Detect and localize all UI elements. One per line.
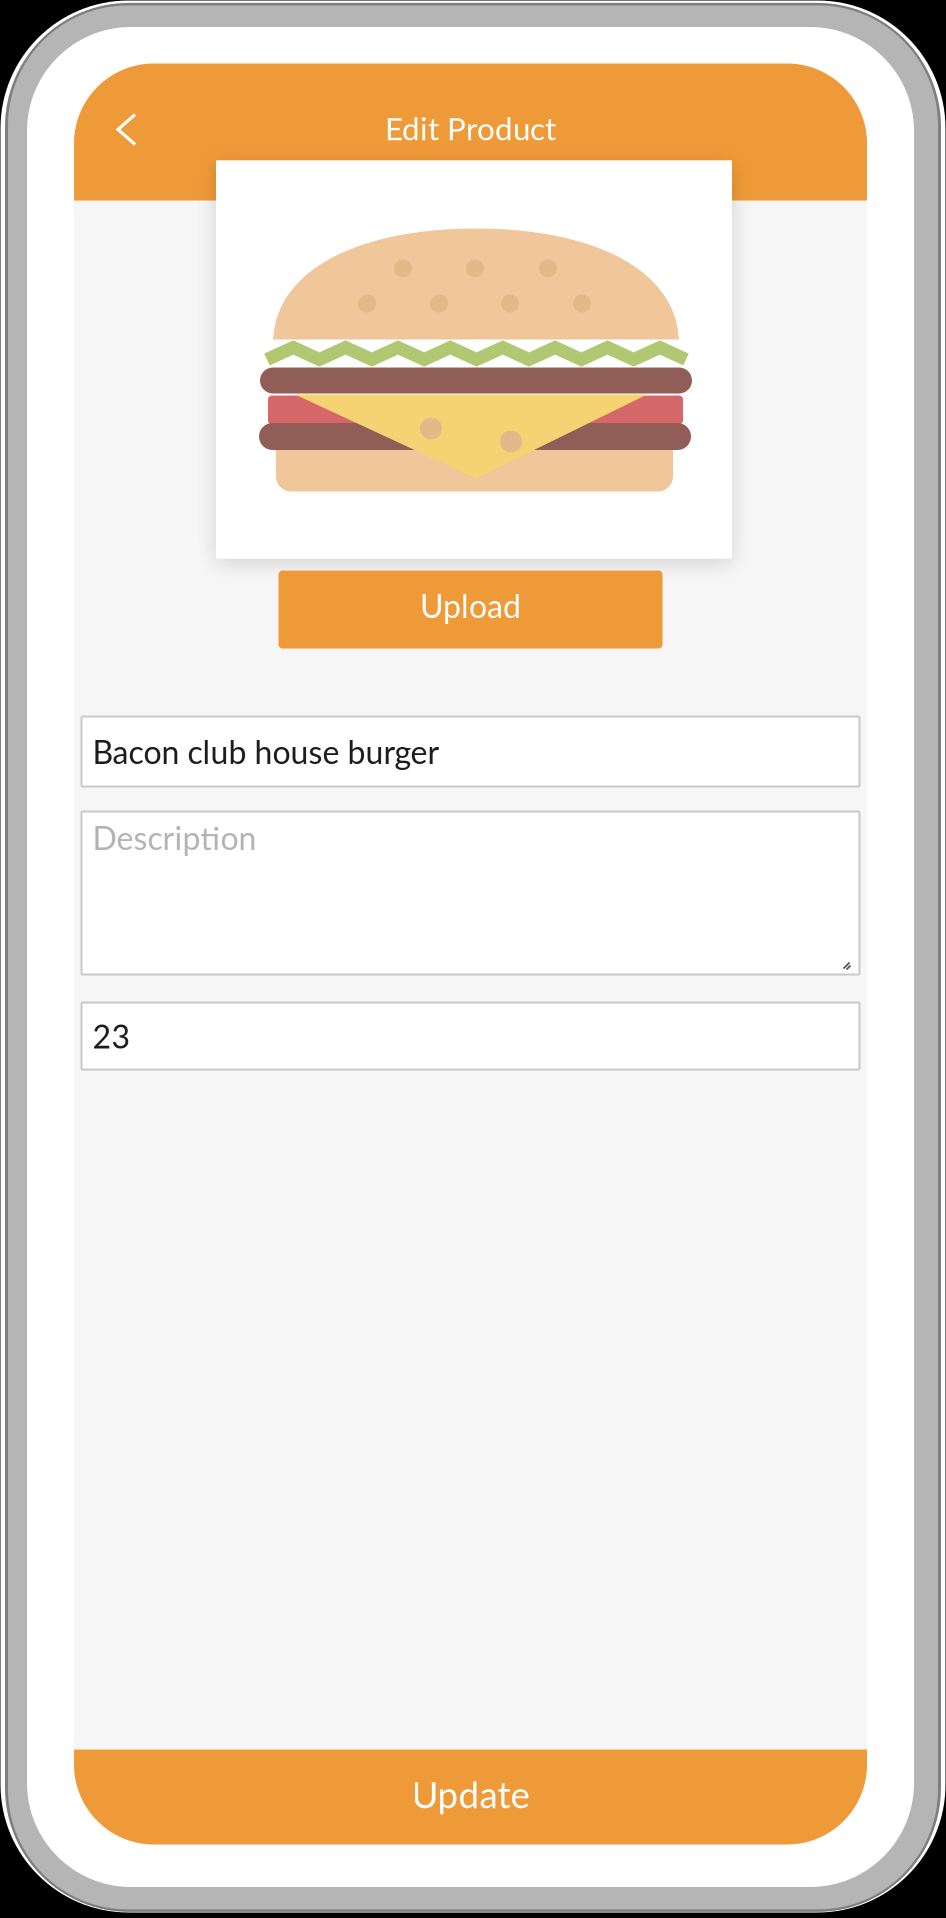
- staticText: Update: [411, 1772, 529, 1816]
- button[interactable]: 23: [81, 1002, 859, 1069]
- staticText: Edit Product: [385, 109, 556, 147]
- button[interactable]: Product photo: [213, 160, 728, 558]
- button[interactable]: Back: [94, 96, 158, 168]
- button[interactable]: Upload: [278, 570, 662, 648]
- button[interactable]: Update: [74, 1749, 867, 1844]
- button[interactable]: Description: [81, 811, 859, 974]
- staticText: Upload: [420, 586, 521, 625]
- button[interactable]: Bacon club house burger: [81, 716, 859, 786]
- staticText: 23: [92, 1017, 130, 1055]
- staticText: Description: [92, 818, 256, 857]
- staticText: Bacon club house burger: [92, 732, 439, 771]
